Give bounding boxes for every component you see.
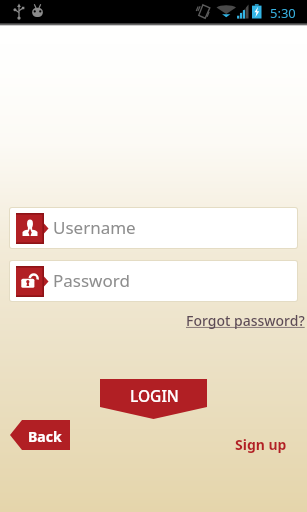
button[interactable]: Forgot password? xyxy=(184,309,307,332)
staticText: LOGIN xyxy=(130,385,179,406)
button[interactable]: Back xyxy=(10,420,70,450)
staticText: 5:30 xyxy=(270,4,296,22)
button[interactable]: Username xyxy=(9,207,298,249)
button[interactable]: Sign up xyxy=(233,433,289,456)
staticText: Username xyxy=(53,216,136,239)
staticText: Forgot password? xyxy=(186,311,305,330)
button[interactable]: Password xyxy=(9,260,298,302)
staticText: Back xyxy=(28,427,62,446)
button[interactable]: LOGIN xyxy=(100,379,207,419)
staticText: Password xyxy=(53,269,130,292)
staticText: Sign up xyxy=(235,435,287,454)
